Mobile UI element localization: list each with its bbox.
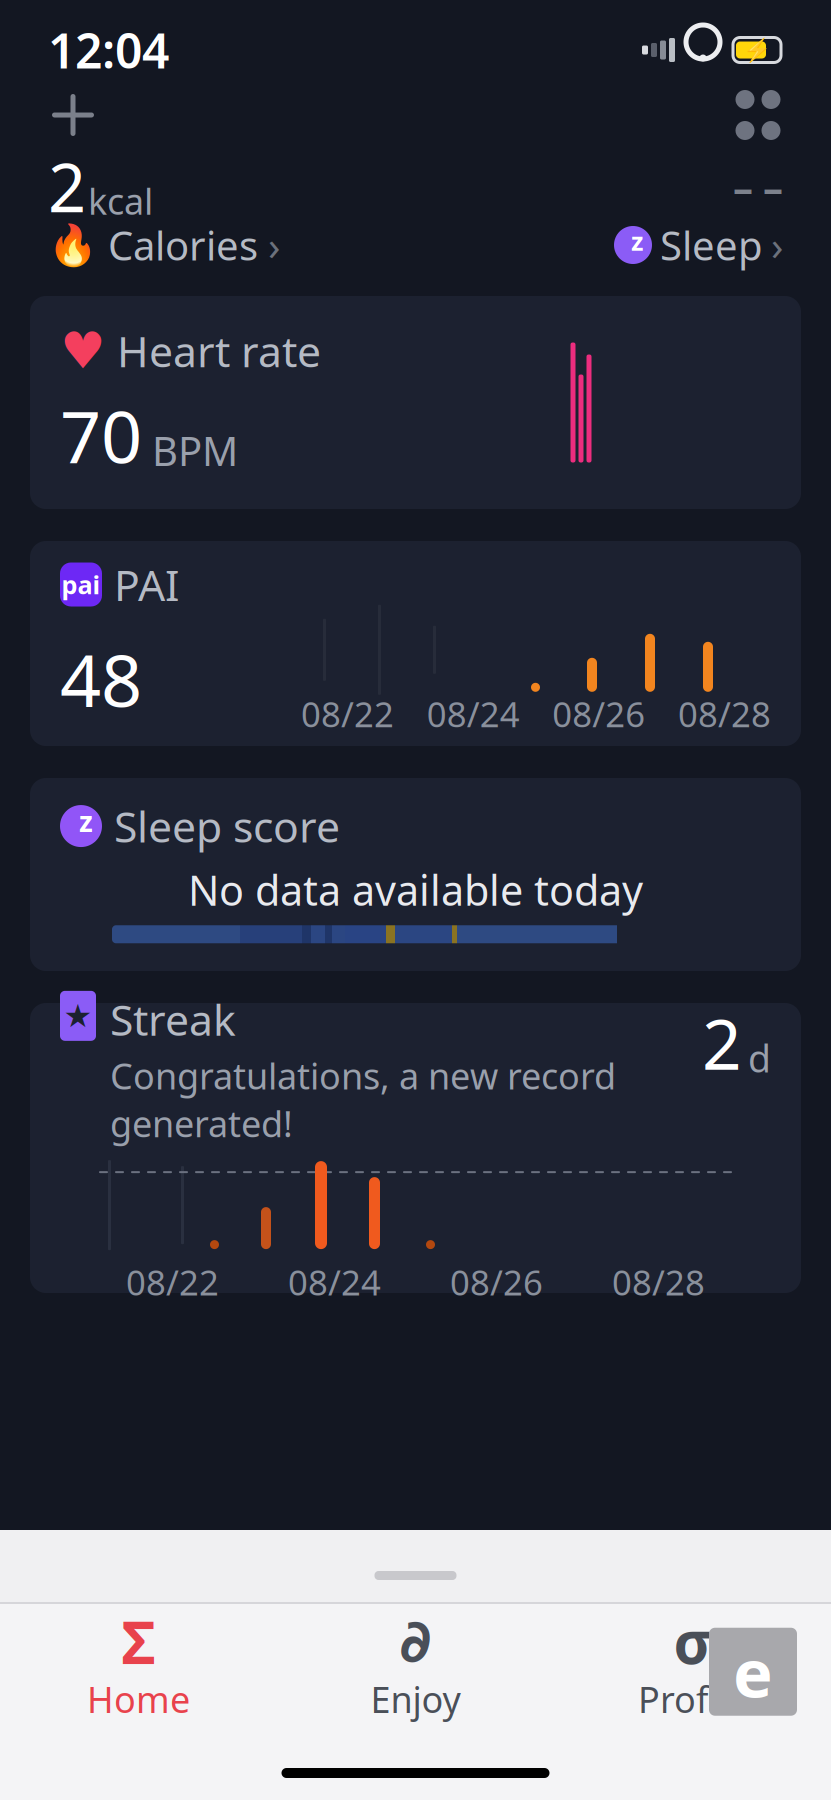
staticText: z [79, 802, 93, 840]
staticText: Heart rate [117, 322, 321, 379]
staticText: PAI [114, 556, 179, 613]
staticText: Calories [108, 218, 258, 271]
staticText: 08/22 [126, 1259, 219, 1305]
staticText: No data available today [188, 862, 643, 917]
staticText: Congratulations, a new record generated! [110, 1051, 616, 1147]
staticText: ♥ [60, 322, 105, 379]
staticText: 2 [48, 142, 86, 231]
button[interactable]: σ [554, 1609, 831, 1729]
button[interactable]: Σ [0, 1609, 277, 1729]
staticText: 08/26 [450, 1259, 543, 1305]
staticText: 🔥 [48, 222, 98, 268]
staticText: σ [673, 1602, 711, 1680]
staticText: pai [61, 568, 100, 601]
staticText: 08/28 [612, 1259, 705, 1305]
staticText: kcal [88, 177, 153, 225]
staticText: Profile [638, 1675, 747, 1723]
staticText: 08/24 [288, 1259, 381, 1305]
staticText: Sleep [660, 218, 763, 271]
staticText: 08/24 [427, 691, 520, 737]
staticText: 08/26 [552, 691, 645, 737]
staticText: – – [733, 160, 783, 213]
button[interactable]: pai [30, 541, 801, 746]
button[interactable]: Widgets [723, 80, 793, 150]
staticText: Sleep score [114, 798, 340, 854]
button[interactable]: ♥ [30, 296, 801, 509]
staticText: › [268, 218, 280, 271]
staticText: Σ [121, 1602, 155, 1680]
button[interactable]: 2 [48, 164, 280, 271]
button[interactable]: ∂ [277, 1609, 554, 1729]
staticText: 2 [702, 997, 742, 1089]
staticText: › [771, 218, 783, 271]
button[interactable]: z [30, 778, 801, 971]
staticText: BPM [152, 424, 238, 477]
staticText: 08/22 [301, 691, 394, 737]
staticText: ★ [63, 998, 92, 1034]
button[interactable]: – – [614, 164, 783, 271]
staticText: z [631, 224, 643, 258]
staticText: 70 [60, 387, 142, 483]
staticText: 08/28 [678, 691, 771, 737]
staticText: 12:04 [48, 18, 169, 82]
staticText: ∂ [399, 1608, 431, 1674]
staticText: Enjoy [370, 1675, 460, 1723]
staticText: ⚡ [743, 37, 771, 63]
staticText: 48 [60, 631, 142, 727]
staticText: Streak [110, 991, 236, 1047]
button[interactable]: Add [38, 80, 108, 150]
staticText: Home [87, 1675, 190, 1723]
button[interactable]: ★ [30, 1003, 801, 1293]
staticText: e [733, 1627, 773, 1716]
staticText: d [748, 1033, 771, 1083]
